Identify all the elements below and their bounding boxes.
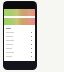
button[interactable] <box>4 46 35 50</box>
button[interactable]: Colour band two <box>4 18 35 25</box>
button[interactable] <box>4 38 35 42</box>
button[interactable] <box>4 26 35 30</box>
button[interactable] <box>4 34 35 38</box>
button[interactable] <box>4 50 35 54</box>
button[interactable] <box>4 54 35 58</box>
button[interactable] <box>4 42 35 46</box>
button[interactable] <box>4 30 35 34</box>
button[interactable]: Colour band one <box>4 9 35 16</box>
